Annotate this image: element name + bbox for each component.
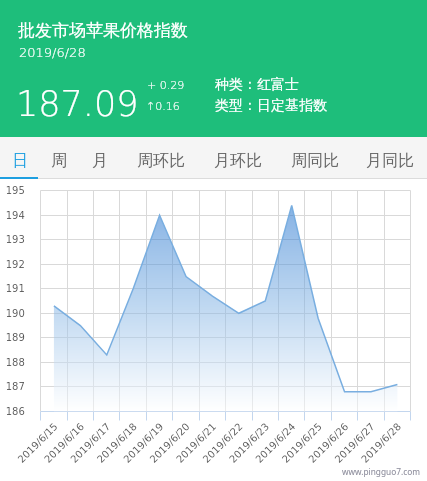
button[interactable]: 周环比 (122, 140, 199, 182)
button[interactable]: 月 (78, 140, 122, 182)
staticText: 月 (92, 151, 108, 171)
staticText: 周同比 (291, 151, 339, 171)
staticText: 周 (51, 151, 67, 171)
staticText: + 0.29 (147, 79, 185, 92)
staticText: 2019/6/28 (19, 45, 86, 60)
staticText: 日 (12, 151, 28, 171)
staticText: 月环比 (214, 151, 262, 171)
button[interactable]: 日 (0, 140, 39, 182)
staticText: 月同比 (366, 151, 414, 171)
staticText: 187.09 (16, 84, 139, 125)
staticText: 周环比 (137, 151, 185, 171)
button[interactable]: 月同比 (352, 140, 427, 182)
button[interactable]: 周 (39, 140, 78, 182)
button[interactable]: 月环比 (199, 140, 277, 182)
staticText: 种类：红富士 (215, 76, 299, 94)
staticText: 类型：日定基指数 (215, 97, 327, 115)
staticText: ↑0.16 (146, 100, 180, 113)
staticText: 批发市场苹果价格指数 (18, 20, 188, 41)
button[interactable]: 周同比 (277, 140, 352, 182)
